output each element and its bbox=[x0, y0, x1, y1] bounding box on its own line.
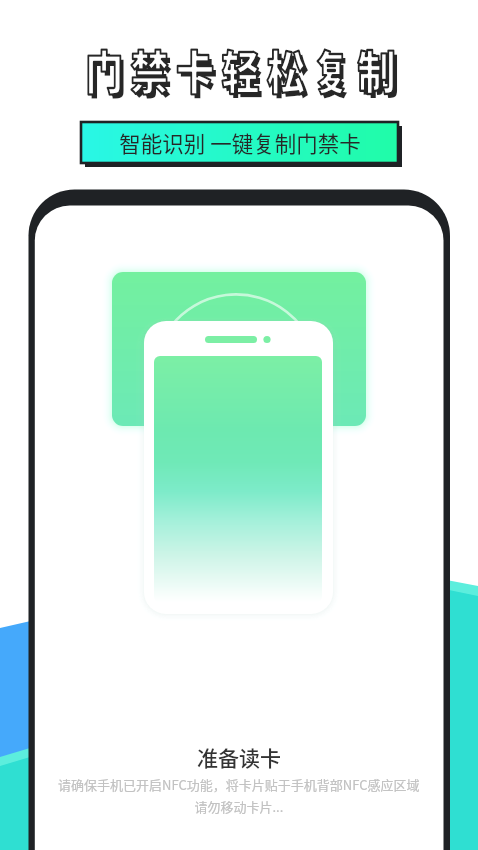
staticText: 智能识别 一键复制门禁卡 bbox=[119, 127, 361, 158]
button[interactable]: Tap NFC card to phone to read bbox=[100, 260, 378, 630]
button[interactable]: 智能识别 一键复制门禁卡 bbox=[81, 122, 402, 167]
